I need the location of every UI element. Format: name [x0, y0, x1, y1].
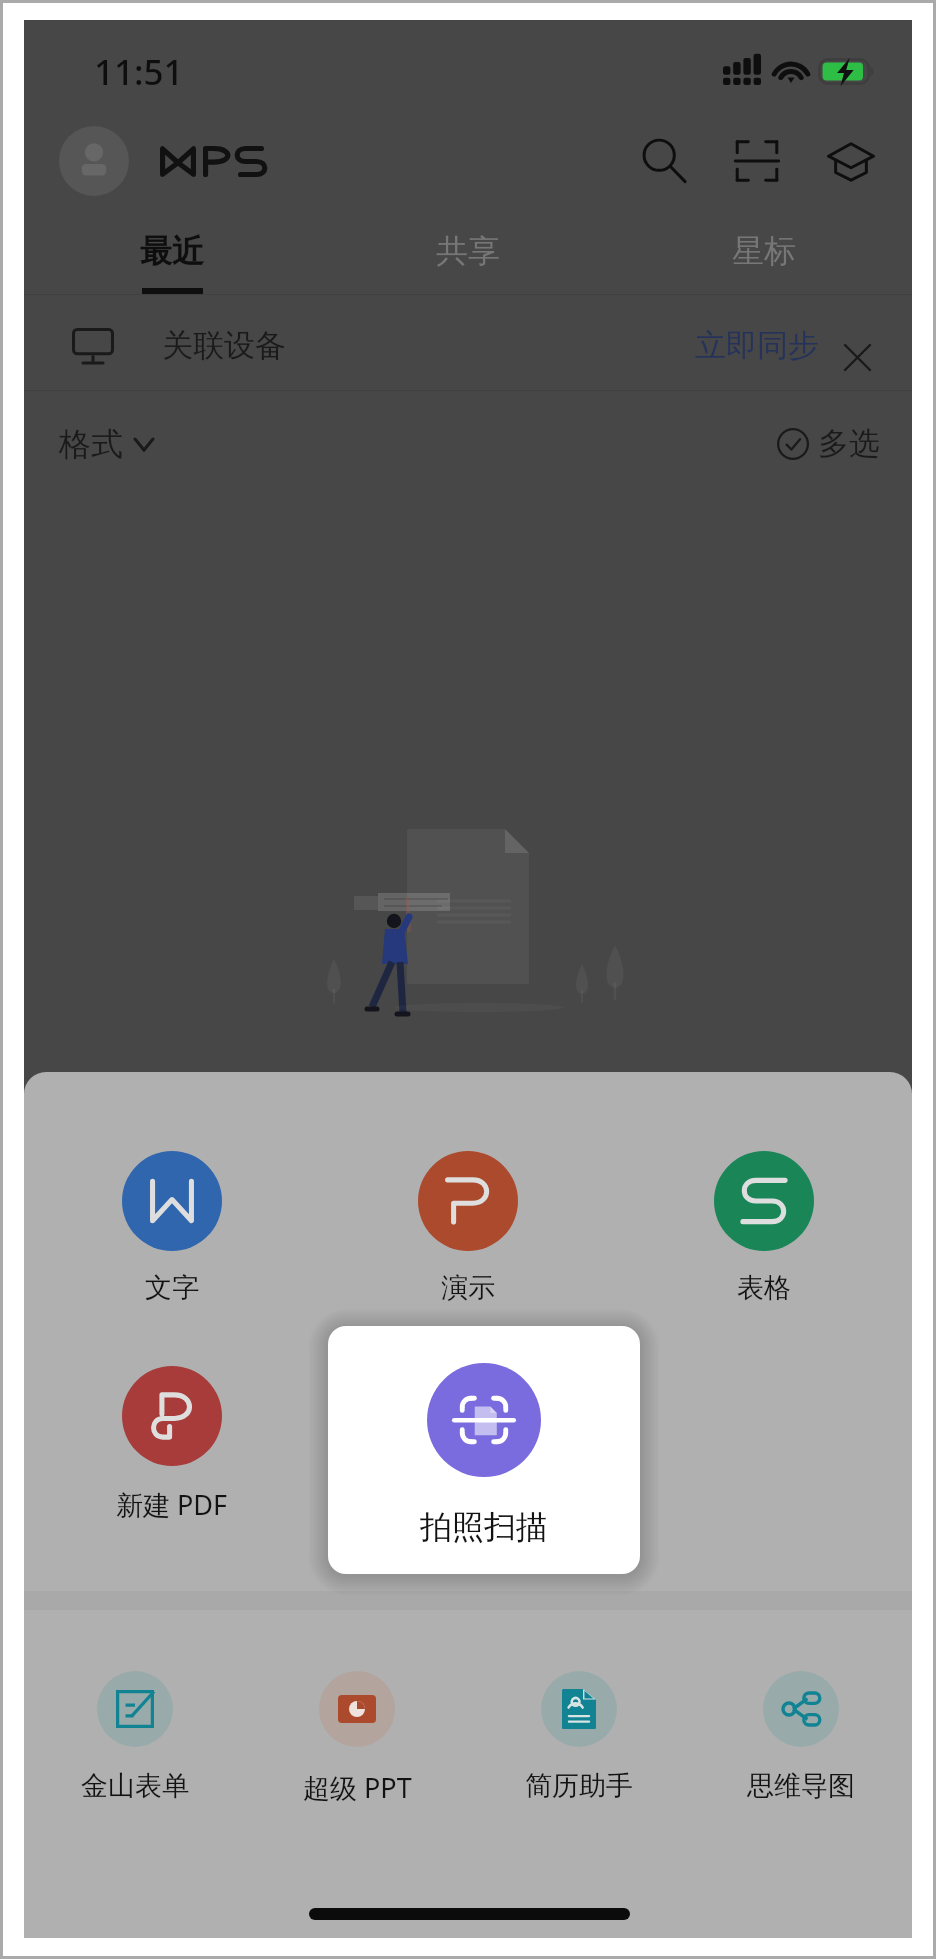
button[interactable]: 多选	[767, 414, 890, 473]
button[interactable]: 格式	[49, 414, 163, 474]
staticText: 超级 PPT	[303, 1769, 412, 1806]
button[interactable]: 演示	[320, 1151, 616, 1305]
staticText: 星标	[732, 231, 796, 271]
staticText: 最近	[140, 231, 204, 271]
button[interactable]: 星标	[616, 226, 912, 314]
button[interactable]: 最近	[24, 226, 320, 314]
staticText: 关联设备	[162, 326, 286, 365]
staticText: 多选	[818, 424, 880, 463]
button[interactable]: 超级 PPT	[246, 1671, 468, 1806]
button[interactable]: 拍照扫描	[328, 1326, 640, 1574]
button[interactable]: Learning centre	[816, 126, 886, 196]
button[interactable]: 思维导图	[690, 1671, 912, 1803]
staticText: 文字	[145, 1271, 199, 1305]
staticText: 简历助手	[525, 1769, 633, 1803]
staticText: 共享	[436, 231, 500, 271]
button[interactable]: 共享	[320, 226, 616, 314]
button[interactable]: 金山表单	[24, 1671, 246, 1803]
staticText: 演示	[441, 1271, 495, 1305]
button[interactable]: Account	[59, 126, 129, 196]
staticText: 金山表单	[81, 1769, 189, 1803]
staticText: 格式	[59, 424, 123, 464]
button[interactable]: 文字	[24, 1151, 320, 1305]
button[interactable]: Search	[629, 126, 699, 196]
staticText: 新建 PDF	[116, 1486, 228, 1523]
button[interactable]: Dismiss	[822, 322, 892, 392]
staticText: 思维导图	[747, 1769, 855, 1803]
button[interactable]: 新建 PDF	[24, 1366, 320, 1523]
staticText: 表格	[737, 1271, 791, 1305]
staticText: 拍照扫描	[420, 1507, 548, 1547]
staticText: 立即同步	[695, 326, 819, 365]
button[interactable]: 简历助手	[468, 1671, 690, 1803]
button[interactable]: 表格	[616, 1151, 912, 1305]
button[interactable]: Scan	[722, 126, 792, 196]
button[interactable]: 立即同步	[684, 316, 830, 375]
staticText: 11:51	[94, 48, 184, 96]
